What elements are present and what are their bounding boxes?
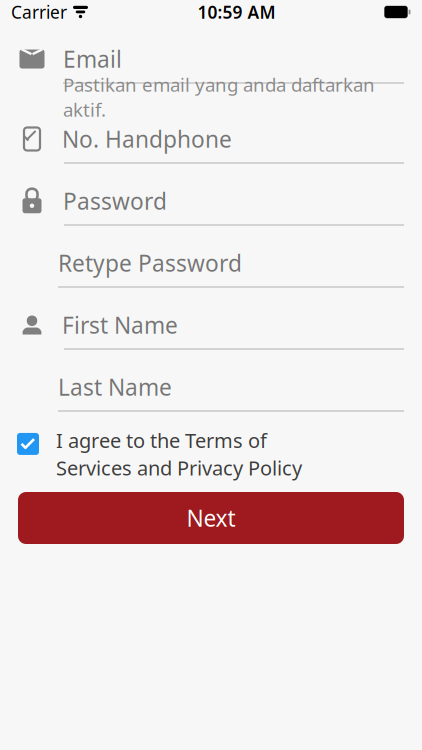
staticText: Next <box>186 503 235 533</box>
staticText: Services and Privacy Policy <box>56 454 302 481</box>
staticText: Password <box>63 186 167 216</box>
button[interactable]: I agree to the Terms of <box>0 428 422 480</box>
staticText: First Name <box>62 310 178 340</box>
staticText: I agree to the Terms of <box>56 427 267 453</box>
staticText: Last Name <box>58 372 172 402</box>
staticText: Retype Password <box>58 248 242 278</box>
staticText: Email <box>63 44 122 74</box>
staticText: No. Handphone <box>62 124 232 154</box>
staticText: 10:59 AM <box>197 0 275 23</box>
staticText: Pastikan email yang anda daftarkan aktif… <box>63 72 375 122</box>
staticText: Carrier <box>11 0 67 23</box>
button[interactable]: Next <box>18 492 404 544</box>
